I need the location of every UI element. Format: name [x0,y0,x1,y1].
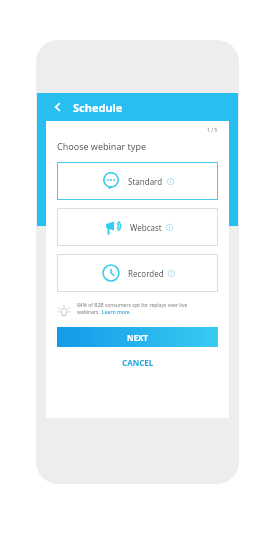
staticText: Standard [128,176,163,187]
button[interactable]: NEXT [57,327,218,347]
button[interactable]: Recorded [57,254,218,292]
staticText: Webcast [130,222,162,233]
button[interactable]: CANCEL [57,355,218,369]
button[interactable]: Webcast [57,208,218,246]
staticText: 84% of B2B consumers opt for replays ove… [77,302,188,309]
button[interactable]: Back [49,98,67,116]
staticText: Schedule [73,100,123,115]
button[interactable]: Learn more [102,309,130,316]
staticText: Recorded [128,268,164,279]
staticText: webinars. [77,309,102,316]
staticText: Choose webinar type [57,140,146,152]
button[interactable]: Standard [57,162,218,200]
staticText: NEXT [127,332,148,343]
staticText: 1 / 5 [207,127,218,134]
staticText: CANCEL [122,357,154,368]
